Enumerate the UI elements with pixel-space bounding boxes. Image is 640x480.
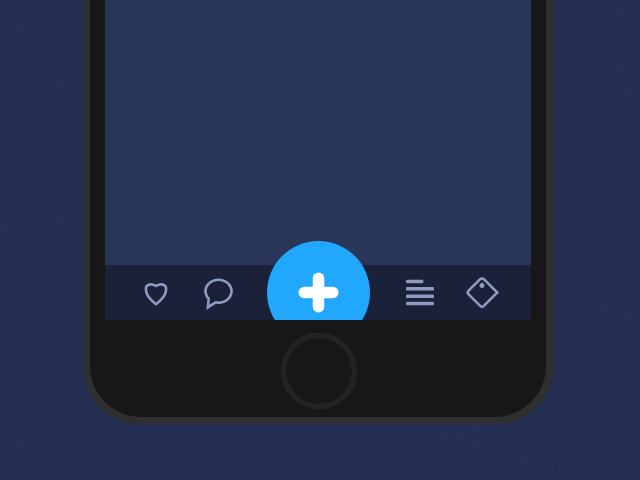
button[interactable]: Comments <box>193 267 245 318</box>
button[interactable]: Tags <box>456 267 508 318</box>
button[interactable]: Likes <box>130 267 182 318</box>
button[interactable]: Add <box>267 241 370 344</box>
button[interactable]: Home <box>283 335 355 407</box>
button[interactable]: Feed <box>394 267 446 318</box>
